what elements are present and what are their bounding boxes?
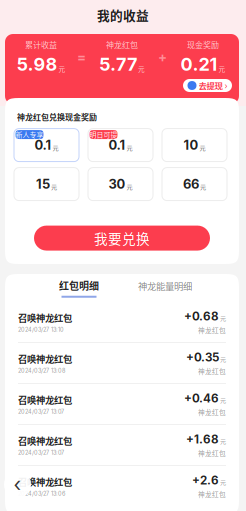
staticText: 现金奖励 <box>187 39 219 50</box>
staticText: 元 <box>220 477 226 486</box>
staticText: 15 <box>36 176 50 192</box>
staticText: 召唤神龙红包 <box>18 311 72 324</box>
staticText: 10 <box>183 137 198 153</box>
staticText: 66 <box>183 176 199 192</box>
button[interactable]: 0.1 <box>14 129 79 162</box>
staticText: 5.77 <box>99 53 137 75</box>
staticText: 召唤神龙红包 <box>18 352 72 365</box>
staticText: 神龙能量明细 <box>138 279 192 293</box>
button[interactable]: 召唤神龙红包 <box>5 302 239 343</box>
staticText: 召唤神龙红包 <box>18 475 72 488</box>
staticText: 5.98 <box>16 53 57 75</box>
staticText: 元 <box>199 143 205 152</box>
staticText: 神龙红包 <box>198 489 226 499</box>
staticText: 神龙红包 <box>198 366 226 376</box>
button[interactable]: 10 <box>162 129 227 162</box>
staticText: + <box>158 49 167 65</box>
staticText: 元 <box>138 64 145 74</box>
staticText: 我要兑换 <box>94 228 150 248</box>
staticText: 神龙红包 <box>106 39 138 50</box>
staticText: 元 <box>218 64 225 74</box>
staticText: 元 <box>220 354 226 363</box>
staticText: 神龙红包兑换现金奖励 <box>17 111 97 123</box>
staticText: 去提现 <box>198 79 222 92</box>
staticText: 我的收益 <box>97 6 149 24</box>
staticText: 2024/03/27 13:06 <box>18 490 65 497</box>
button[interactable]: 召唤神龙红包 <box>5 343 239 384</box>
staticText: 明日可提 <box>89 130 117 140</box>
staticText: 元 <box>200 182 206 191</box>
staticText: 元 <box>126 182 132 191</box>
button[interactable]: 召唤神龙红包 <box>5 466 239 506</box>
button[interactable]: 66 <box>162 168 227 201</box>
staticText: 元 <box>220 313 226 322</box>
button[interactable]: 召唤神龙红包 <box>5 384 239 425</box>
staticText: 元 <box>126 143 132 152</box>
button[interactable]: 神龙能量明细 <box>122 274 208 302</box>
staticText: ‹ <box>13 472 21 497</box>
button[interactable]: 0.1 <box>88 129 153 162</box>
staticText: 30 <box>108 176 125 192</box>
staticText: 元 <box>220 436 226 445</box>
staticText: 神龙红包 <box>198 448 226 458</box>
staticText: = <box>77 49 86 65</box>
staticText: 新人专享 <box>15 130 43 140</box>
staticText: 神龙红包 <box>198 407 226 417</box>
staticText: › <box>224 81 227 90</box>
staticText: +2.6 <box>192 473 219 487</box>
staticText: 2024/03/27 13:10 <box>18 326 64 333</box>
staticText: 0.1 <box>108 137 125 153</box>
staticText: 召唤神龙红包 <box>18 393 72 406</box>
button[interactable]: 去提现 <box>183 79 232 92</box>
staticText: 2024/03/27 13:07 <box>18 449 64 456</box>
staticText: 2024/03/27 13:07 <box>18 408 64 415</box>
staticText: 0.21 <box>180 53 217 75</box>
button[interactable]: Back <box>4 471 31 498</box>
button[interactable]: 红包明细 <box>36 274 122 302</box>
staticText: 元 <box>58 64 65 74</box>
staticText: 累计收益 <box>25 39 57 50</box>
staticText: +0.35 <box>186 350 219 364</box>
staticText: 元 <box>220 395 226 404</box>
button[interactable]: 30 <box>88 168 153 201</box>
staticText: 2024/03/27 13:08 <box>18 367 65 374</box>
staticText: 召唤神龙红包 <box>18 434 72 447</box>
staticText: +0.68 <box>184 309 219 323</box>
staticText: +1.68 <box>186 432 219 446</box>
staticText: 0.1 <box>34 137 51 153</box>
button[interactable]: 15 <box>14 168 79 201</box>
button[interactable]: 我要兑换 <box>34 226 210 251</box>
staticText: 红包明细 <box>59 278 99 293</box>
staticText: +0.46 <box>184 391 219 405</box>
staticText: 元 <box>51 182 57 191</box>
staticText: 神龙红包 <box>198 325 226 335</box>
staticText: 元 <box>52 143 58 152</box>
button[interactable]: 召唤神龙红包 <box>5 425 239 466</box>
